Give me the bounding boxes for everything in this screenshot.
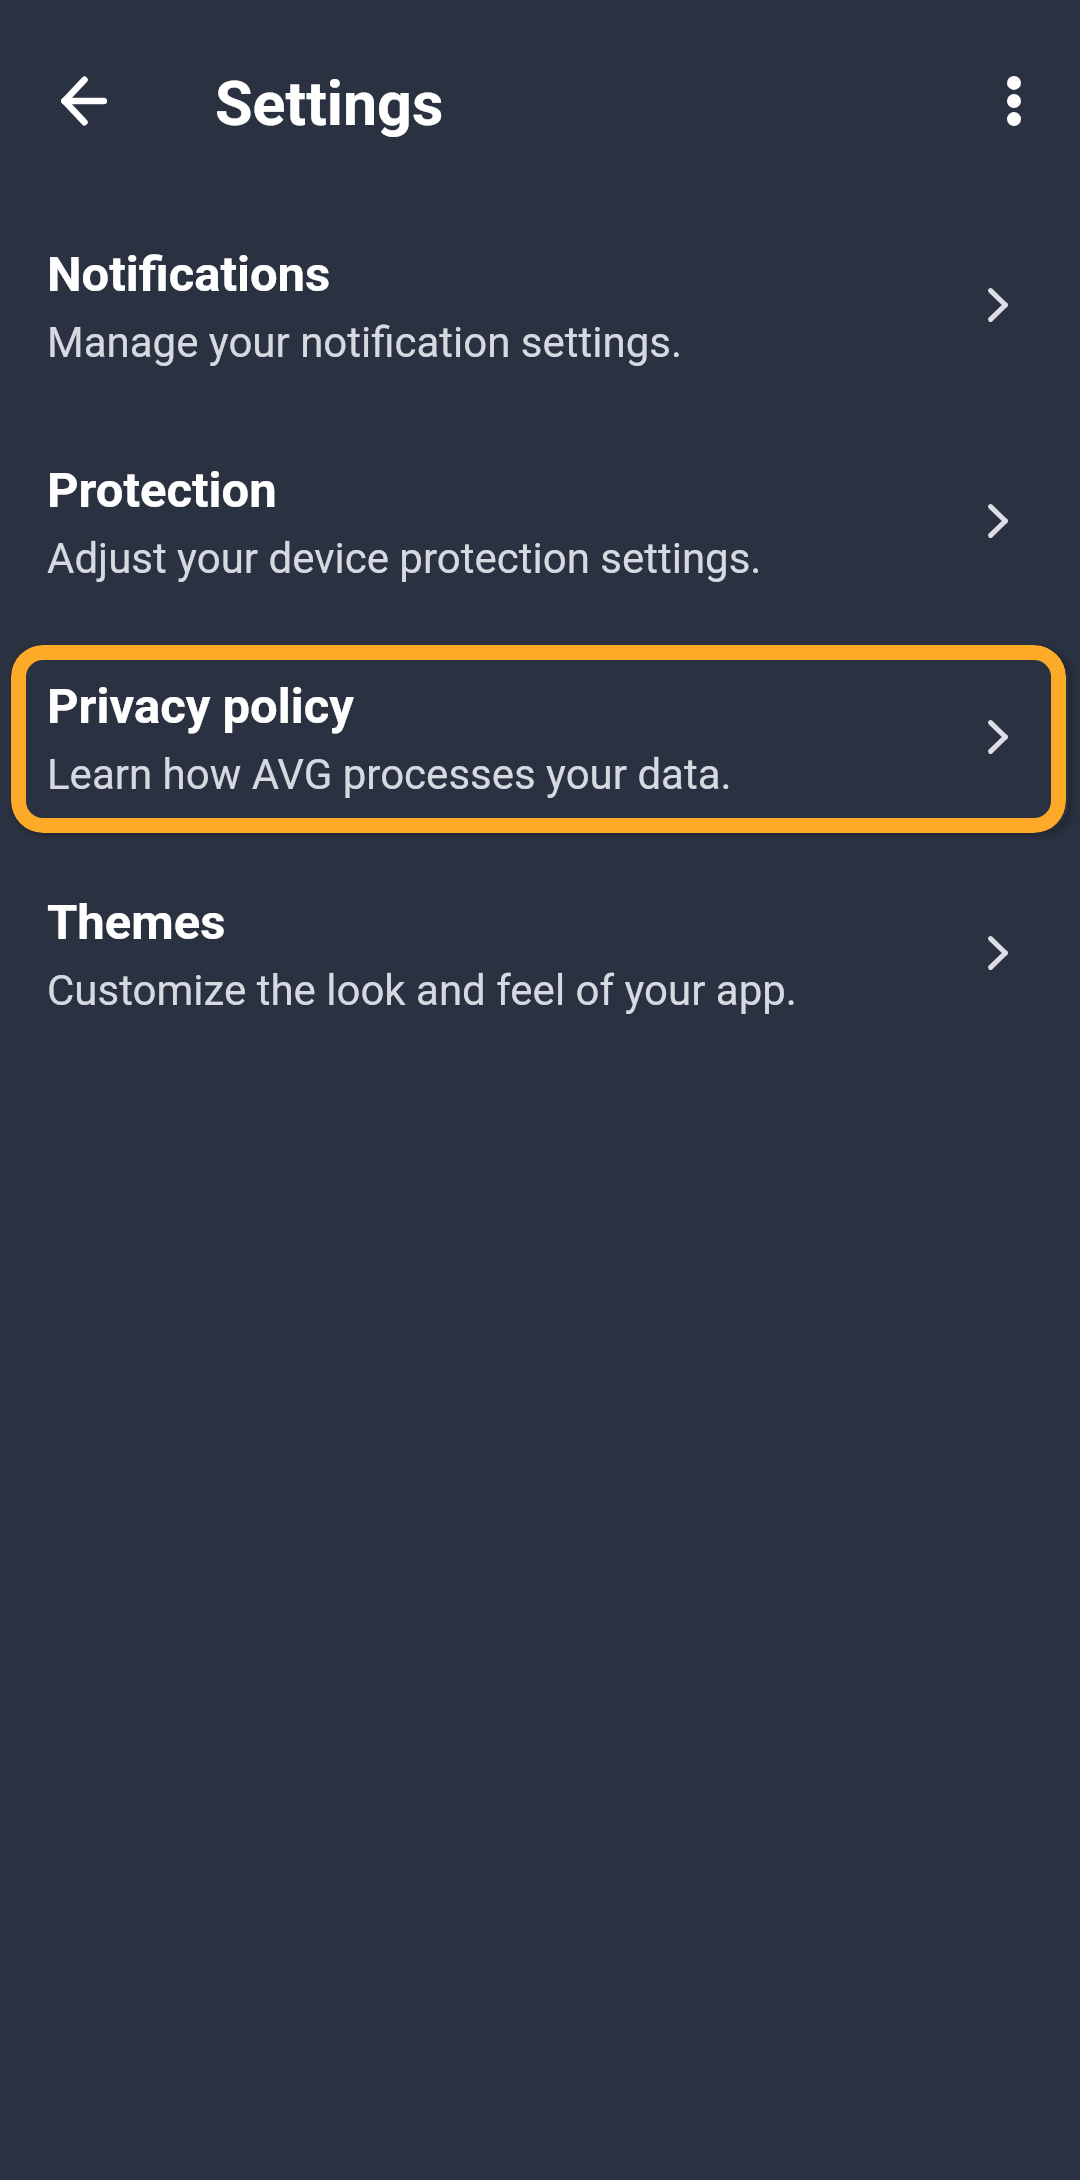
button[interactable]: Privacy policy [0,636,1080,852]
staticText: Protection [47,462,277,519]
button[interactable]: Notifications [0,204,1080,420]
button[interactable]: More options [966,53,1062,149]
staticText: Themes [47,894,226,951]
staticText: Privacy policy [47,678,354,735]
button[interactable]: Navigate up [40,53,136,149]
staticText: Manage your notification settings. [47,318,683,367]
staticText: Settings [215,68,444,139]
staticText: Notifications [47,246,331,303]
staticText: Customize the look and feel of your app. [47,966,797,1015]
staticText: Learn how AVG processes your data. [47,750,732,799]
staticText: Adjust your device protection settings. [47,534,762,583]
button[interactable]: Themes [0,852,1080,1068]
button[interactable]: Protection [0,420,1080,636]
